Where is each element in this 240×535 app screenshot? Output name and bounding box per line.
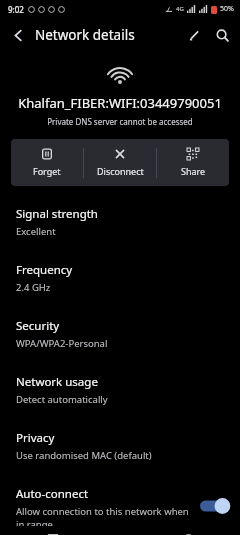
button[interactable]: Auto-connect (0, 477, 240, 535)
button[interactable]: Back (4, 21, 32, 49)
staticText: 2.4 GHz (16, 281, 51, 294)
staticText: Excellent (16, 225, 56, 238)
staticText: Disconnect (97, 165, 144, 177)
staticText: Privacy (16, 430, 55, 446)
staticText: Auto-connect (16, 486, 89, 502)
staticText: Use randomised MAC (default) (16, 449, 152, 462)
button[interactable]: Security (0, 309, 240, 359)
staticText: Allow connection to this network when (16, 505, 189, 518)
staticText: Share (181, 165, 206, 177)
staticText: Signal strength (16, 206, 98, 222)
staticText: Security (16, 318, 60, 334)
staticText: 50% (220, 4, 234, 14)
button[interactable]: Search (208, 21, 236, 49)
staticText: Network details (35, 26, 135, 44)
button[interactable]: Forget (11, 140, 83, 185)
staticText: in range (16, 518, 53, 526)
button[interactable]: Share (157, 140, 229, 185)
staticText: Forget (33, 165, 61, 177)
staticText: 4G (176, 5, 184, 13)
staticText: Khalfan_FIBER:WIFI:03449790051 (6, 94, 234, 112)
staticText: Private DNS server cannot be accessed (0, 116, 240, 127)
staticText: 9:02 (8, 4, 24, 15)
button[interactable]: Frequency (0, 253, 240, 303)
button[interactable]: Privacy (0, 421, 240, 471)
button[interactable]: Disconnect (84, 140, 156, 185)
staticText: Detect automatically (16, 393, 108, 406)
button[interactable]: Auto-connect toggle (200, 497, 230, 515)
staticText: WPA/WPA2-Personal (16, 337, 108, 350)
button[interactable]: Network usage (0, 365, 240, 415)
button[interactable]: Edit (180, 21, 208, 49)
staticText: Frequency (16, 262, 73, 278)
staticText: Network usage (16, 374, 98, 390)
button[interactable]: Signal strength (0, 197, 240, 247)
